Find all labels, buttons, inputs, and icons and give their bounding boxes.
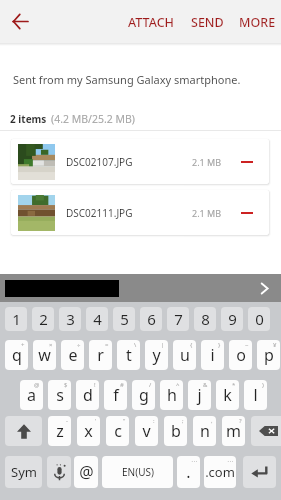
button[interactable]: 1 xyxy=(5,307,27,331)
button[interactable]: = xyxy=(89,340,112,370)
button[interactable]: ! xyxy=(76,380,99,410)
button[interactable]: } xyxy=(201,340,224,370)
staticText: + xyxy=(21,341,25,349)
button[interactable]: Back xyxy=(5,6,36,37)
button[interactable]: " xyxy=(106,416,129,446)
button[interactable]: enter xyxy=(243,456,276,488)
button[interactable]: Remove attachment xyxy=(235,150,259,174)
button[interactable]: del xyxy=(251,416,281,446)
staticText: - xyxy=(66,417,68,425)
staticText: | xyxy=(161,341,165,349)
staticText: z xyxy=(56,420,64,442)
button[interactable]: @ xyxy=(74,456,98,488)
staticText: e xyxy=(68,344,78,366)
button[interactable]: Sym xyxy=(5,456,42,488)
button[interactable]: 6 xyxy=(140,307,162,331)
button[interactable]: ' xyxy=(77,416,100,446)
staticText: k xyxy=(223,384,232,406)
staticText: { xyxy=(190,341,193,349)
button[interactable]: - xyxy=(48,416,71,446)
button[interactable]: shift xyxy=(5,416,42,446)
button[interactable]: ? xyxy=(222,416,245,446)
staticText: , xyxy=(211,417,213,425)
staticText: p xyxy=(264,344,274,366)
staticText: = xyxy=(105,341,109,349)
button[interactable]: ^ xyxy=(160,380,183,410)
button[interactable]: ; xyxy=(164,416,187,446)
button[interactable]: & xyxy=(188,380,211,410)
button[interactable]: 2 xyxy=(32,307,54,331)
button[interactable]: ÷ xyxy=(61,340,84,370)
button[interactable]: # xyxy=(104,380,127,410)
button[interactable]: DSC02111.JPG xyxy=(11,190,269,235)
button[interactable]: MORE xyxy=(234,7,281,38)
staticText: @ xyxy=(34,381,40,389)
staticText: . xyxy=(186,461,191,483)
button[interactable]: ¥ xyxy=(257,340,280,370)
button[interactable]: 7 xyxy=(167,307,189,331)
button[interactable]: ⋯ xyxy=(177,456,200,488)
staticText: ! xyxy=(94,381,96,389)
staticText: ' xyxy=(95,417,97,425)
staticText: DSC02107.JPG xyxy=(66,155,133,169)
staticText: ÷ xyxy=(77,341,81,349)
staticText: t xyxy=(126,344,132,366)
button[interactable]: { xyxy=(173,340,196,370)
staticText: ; xyxy=(182,417,184,425)
staticText: 3 xyxy=(66,309,75,329)
button[interactable]: mic xyxy=(47,456,71,488)
staticText: m xyxy=(226,420,241,442)
staticText: Sent from my Samsung Galaxy smartphone. xyxy=(13,72,241,87)
staticText: 2.1 MB xyxy=(192,207,222,219)
button[interactable]: / xyxy=(132,380,155,410)
button[interactable]: × xyxy=(33,340,56,370)
staticText: w xyxy=(38,344,51,366)
button[interactable]: @ xyxy=(20,380,43,410)
staticText: \ xyxy=(134,341,137,349)
staticText: × xyxy=(49,341,53,349)
button[interactable]: ⋯ xyxy=(204,456,236,488)
staticText: & xyxy=(203,381,208,389)
staticText: * xyxy=(232,381,236,389)
staticText: y xyxy=(152,344,161,366)
button[interactable]: * xyxy=(216,380,239,410)
staticText: MORE xyxy=(239,14,276,31)
button[interactable]: 8 xyxy=(194,307,216,331)
staticText: v xyxy=(142,420,151,442)
button[interactable]: SEND xyxy=(186,7,229,38)
button[interactable]: 3 xyxy=(59,307,81,331)
staticText: f xyxy=(113,384,119,406)
staticText: 5 xyxy=(120,309,129,329)
button[interactable]: : xyxy=(135,416,158,446)
button[interactable]: ATTACH xyxy=(123,7,179,38)
button[interactable]: 9 xyxy=(221,307,243,331)
staticText: DSC02111.JPG xyxy=(66,206,133,220)
button[interactable]: | xyxy=(145,340,168,370)
button[interactable]: More suggestions xyxy=(253,277,275,299)
button[interactable]: DSC02107.JPG xyxy=(11,139,269,184)
button[interactable]: 4 xyxy=(86,307,108,331)
button[interactable]: \ xyxy=(117,340,140,370)
button[interactable]: ) xyxy=(244,380,267,410)
button[interactable]: EN(US) xyxy=(102,456,173,488)
staticText: @ xyxy=(79,461,94,483)
staticText: n xyxy=(200,420,210,442)
staticText: ? xyxy=(239,417,242,425)
staticText: ⋯ xyxy=(227,457,233,464)
staticText: 1 xyxy=(12,309,21,329)
button[interactable]: 0 xyxy=(248,307,270,331)
staticText: ~ xyxy=(245,341,249,349)
button[interactable]: , xyxy=(193,416,216,446)
staticText: ATTACH xyxy=(128,14,174,31)
staticText: d xyxy=(83,384,93,406)
staticText: s xyxy=(56,384,64,406)
staticText: ^ xyxy=(176,381,180,389)
staticText: ⋯ xyxy=(191,457,197,464)
button[interactable]: 5 xyxy=(113,307,135,331)
button[interactable]: Remove attachment xyxy=(235,201,259,225)
button[interactable]: + xyxy=(5,340,28,370)
staticText: " xyxy=(123,417,126,425)
staticText: SEND xyxy=(191,14,224,31)
button[interactable]: $ xyxy=(48,380,71,410)
button[interactable]: ~ xyxy=(229,340,252,370)
